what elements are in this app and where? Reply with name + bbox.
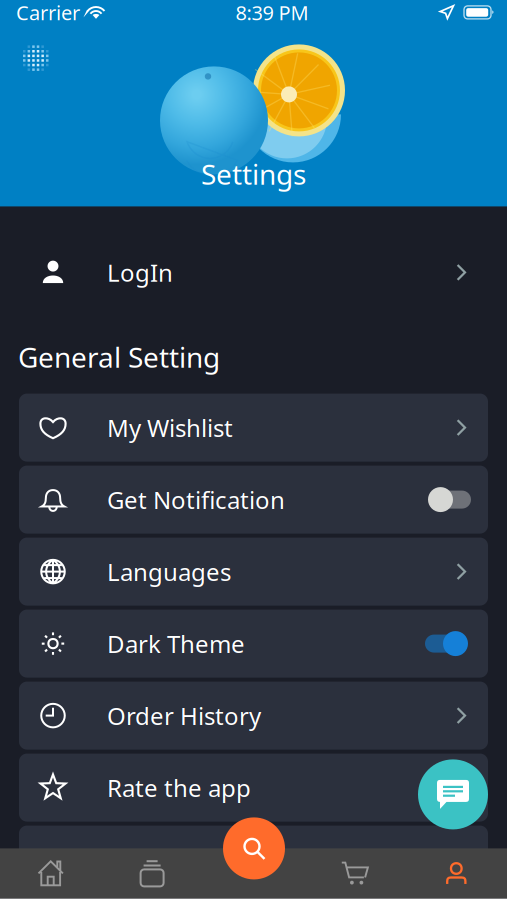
button[interactable]: Rate the app (19, 754, 488, 822)
staticText: Settings (201, 155, 306, 192)
button[interactable]: Toggle off (425, 483, 471, 517)
button[interactable]: Home (0, 848, 101, 898)
button[interactable]: Get Notification (19, 466, 488, 534)
staticText: Dark Theme (107, 628, 245, 660)
button[interactable]: Chat (418, 759, 488, 829)
staticText: Get Notification (107, 484, 285, 516)
button[interactable]: Toggle on (425, 627, 471, 661)
staticText: General Setting (18, 338, 220, 376)
button[interactable] (19, 826, 488, 894)
button[interactable]: Dark Theme (19, 610, 488, 678)
button[interactable]: Products (101, 848, 203, 898)
staticText: Order History (107, 700, 261, 732)
staticText: My Wishlist (107, 412, 233, 444)
staticText: Carrier (16, 0, 80, 26)
button[interactable]: Languages (19, 538, 488, 606)
staticText: Rate the app (107, 772, 251, 804)
button[interactable]: Menu (14, 36, 58, 80)
staticText: Languages (107, 556, 231, 588)
staticText: LogIn (107, 256, 173, 288)
button[interactable]: My Wishlist (19, 394, 488, 462)
button[interactable]: Profile (406, 848, 507, 898)
button[interactable]: Search (223, 817, 285, 879)
button[interactable]: Cart (304, 848, 406, 898)
staticText: 8:39 PM (235, 0, 308, 26)
button[interactable]: LogIn (0, 206, 507, 338)
button[interactable]: Order History (19, 682, 488, 750)
